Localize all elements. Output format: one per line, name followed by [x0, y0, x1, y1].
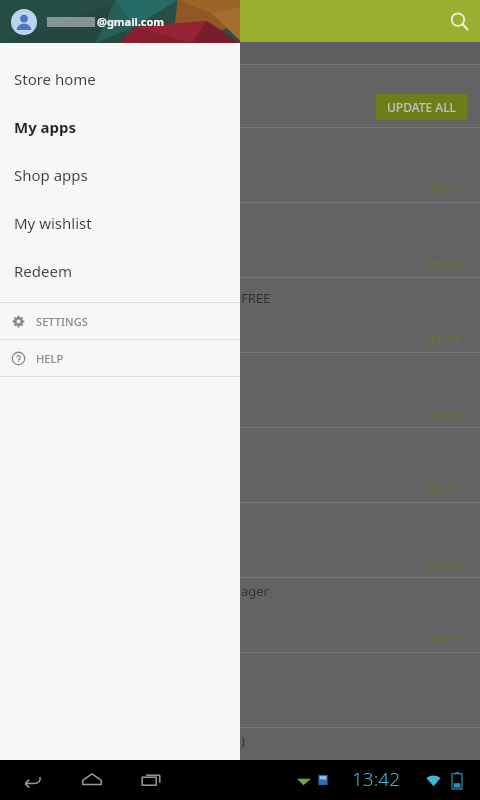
- staticText: My apps: [14, 117, 77, 137]
- staticText: UPDATE ALL: [387, 99, 456, 115]
- staticText: UPDATE: [424, 483, 462, 497]
- staticText: FREE: [241, 289, 271, 307]
- button[interactable]: Shop apps: [0, 151, 240, 199]
- button[interactable]: Search: [438, 0, 480, 42]
- button[interactable]: My wishlist: [0, 199, 240, 247]
- staticText: SETTINGS: [36, 314, 88, 329]
- staticText: Shop apps: [14, 165, 88, 185]
- staticText: ager: [241, 582, 269, 600]
- staticText: ): [241, 732, 245, 750]
- staticText: @gmail.com: [97, 14, 165, 29]
- staticText: UPDATE: [424, 558, 462, 572]
- button[interactable]: HELP: [0, 340, 240, 376]
- staticText: UPDATE: [424, 183, 462, 197]
- button[interactable]: My apps: [0, 103, 240, 151]
- button[interactable]: UPDATE: [424, 483, 462, 497]
- staticText: Google Play: [52, 10, 147, 33]
- staticText: 13:42: [352, 766, 401, 792]
- button[interactable]: Home: [72, 760, 112, 800]
- staticText: UPDATE: [424, 633, 462, 647]
- button[interactable]: SETTINGS: [0, 303, 240, 339]
- staticText: Redeem: [14, 261, 72, 281]
- staticText: UPDATE: [424, 333, 462, 347]
- button[interactable]: UPDATE: [424, 558, 462, 572]
- button[interactable]: UPDATE: [424, 408, 462, 422]
- staticText: UPDATE: [424, 408, 462, 422]
- button[interactable]: Back: [12, 760, 52, 800]
- staticText: Store home: [14, 69, 96, 89]
- staticText: UPDATE: [424, 258, 462, 272]
- button[interactable]: UPDATE: [424, 258, 462, 272]
- button[interactable]: UPDATE: [424, 633, 462, 647]
- button[interactable]: Open navigation drawer: [0, 5, 24, 37]
- button[interactable]: Store home: [0, 55, 240, 103]
- button[interactable]: Redeem: [0, 247, 240, 295]
- button[interactable]: UPDATE: [424, 183, 462, 197]
- button[interactable]: UPDATE: [424, 333, 462, 347]
- button[interactable]: UPDATE ALL: [376, 94, 467, 120]
- staticText: HELP: [36, 351, 64, 366]
- staticText: My wishlist: [14, 213, 92, 233]
- button[interactable]: Recent apps: [131, 760, 171, 800]
- button[interactable]: @gmail.com: [0, 0, 240, 43]
